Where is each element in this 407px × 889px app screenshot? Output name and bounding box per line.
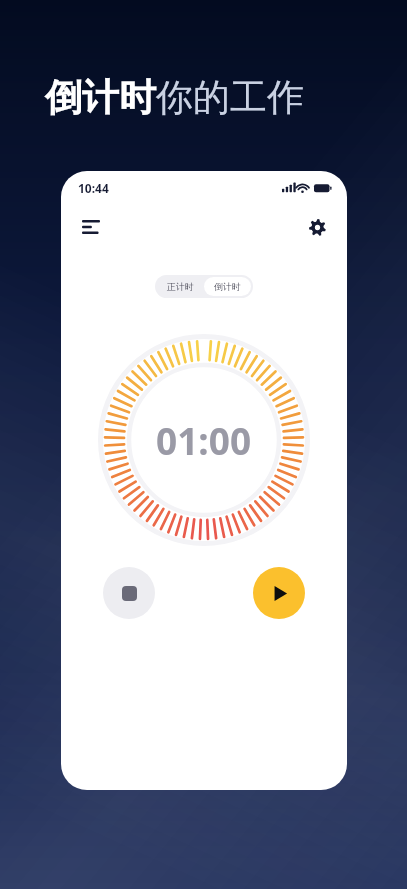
staticText: 01:00 bbox=[156, 415, 252, 465]
staticText: 倒计时 bbox=[214, 281, 241, 292]
button[interactable]: Stop bbox=[103, 567, 155, 619]
button[interactable]: 倒计时 bbox=[204, 277, 251, 296]
button[interactable]: Menu bbox=[74, 210, 108, 244]
staticText: 倒计时 bbox=[45, 74, 156, 121]
staticText: 正计时 bbox=[167, 281, 194, 292]
button[interactable]: 正计时 bbox=[157, 277, 204, 296]
staticText: 你的工作 bbox=[156, 74, 304, 121]
button[interactable]: Play bbox=[253, 567, 305, 619]
staticText: 10:44 bbox=[78, 180, 109, 196]
button[interactable]: Settings bbox=[300, 210, 334, 244]
